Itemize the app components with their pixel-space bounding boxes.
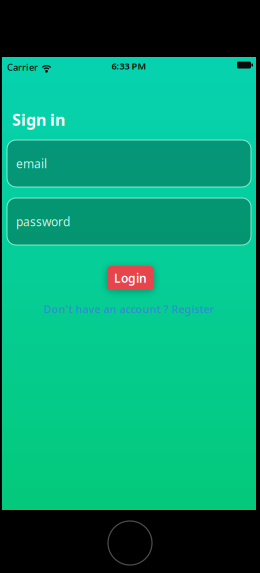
staticText: email <box>16 155 47 171</box>
button[interactable]: Login <box>107 266 154 290</box>
staticText: Sign in <box>12 109 65 130</box>
staticText: 6:33 PM <box>111 60 146 72</box>
staticText: password <box>16 213 70 229</box>
button[interactable]: password <box>7 198 251 245</box>
staticText: Carrier <box>7 61 38 73</box>
button[interactable]: email <box>7 140 251 187</box>
staticText: Don't have an account ? Register <box>43 302 214 316</box>
button[interactable]: Don't have an account ? Register <box>2 303 256 315</box>
staticText: Login <box>114 270 147 286</box>
